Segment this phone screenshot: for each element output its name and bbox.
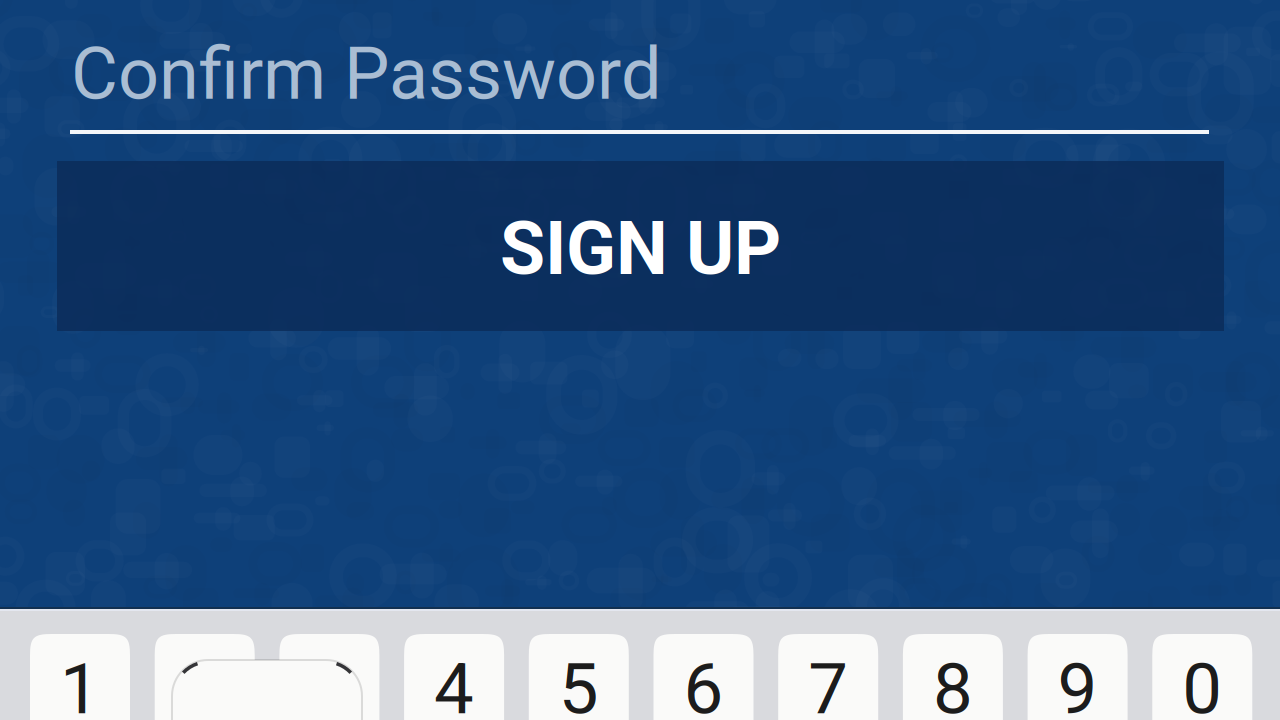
staticText: 1 xyxy=(60,648,100,720)
button[interactable]: 5 xyxy=(529,634,629,720)
staticText: 9 xyxy=(1058,648,1098,720)
staticText: 3 xyxy=(309,648,349,720)
staticText: 8 xyxy=(933,648,973,720)
button[interactable]: 6 xyxy=(653,634,753,720)
button[interactable]: SIGN UP xyxy=(57,161,1224,331)
staticText: SIGN UP xyxy=(500,206,781,292)
staticText: 0 xyxy=(1182,648,1222,720)
button[interactable]: 4 xyxy=(404,634,504,720)
button[interactable]: 0 xyxy=(1152,634,1252,720)
staticText: 5 xyxy=(559,648,599,720)
button[interactable]: 3 xyxy=(279,634,379,720)
button[interactable]: 7 xyxy=(778,634,878,720)
staticText: 2 xyxy=(185,648,225,720)
staticText: 6 xyxy=(683,648,723,720)
staticText: Confirm Password xyxy=(71,32,662,116)
staticText: 7 xyxy=(808,648,848,720)
button[interactable]: 8 xyxy=(903,634,1003,720)
button[interactable]: 1 xyxy=(30,634,130,720)
button[interactable]: 9 xyxy=(1028,634,1128,720)
button[interactable]: 2 xyxy=(155,634,255,720)
button[interactable]: Confirm Password xyxy=(70,27,1213,147)
staticText: 4 xyxy=(434,648,474,720)
